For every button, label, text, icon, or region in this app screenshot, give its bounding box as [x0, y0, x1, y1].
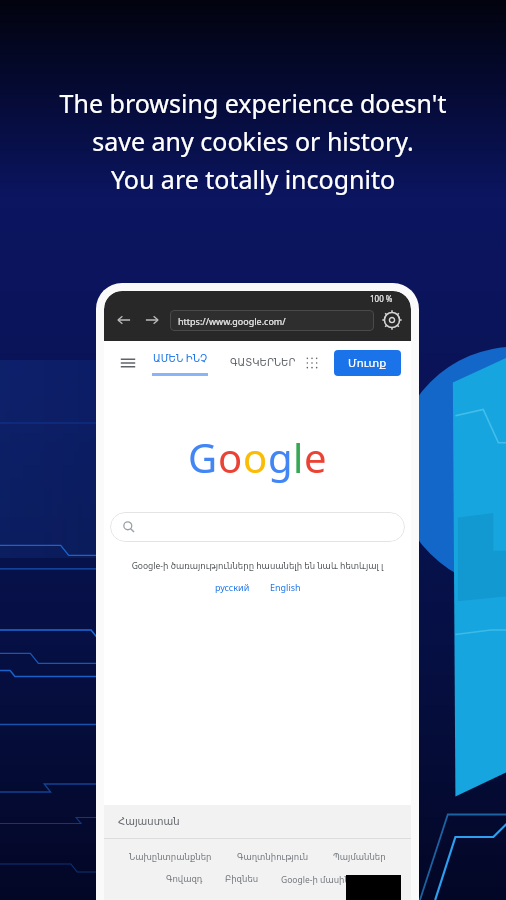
button[interactable]: Menu: [116, 351, 140, 375]
staticText: G: [188, 430, 218, 484]
button[interactable]: русский: [215, 581, 250, 593]
button[interactable]: Back: [110, 306, 138, 334]
button[interactable]: [110, 512, 405, 542]
button[interactable]: Google apps: [300, 351, 324, 375]
button[interactable]: Գաղտնիություն: [237, 852, 309, 862]
button[interactable]: Նախընտրանքներ: [129, 852, 212, 862]
staticText: o: [218, 430, 243, 484]
staticText: ԱՄԵՆ ԻՆՉ: [153, 351, 208, 365]
staticText: e: [304, 430, 327, 484]
button[interactable]: Forward: [138, 306, 166, 334]
button[interactable]: Մուտք: [334, 350, 401, 376]
staticText: g: [268, 430, 293, 484]
button[interactable]: Գովազդ: [166, 874, 203, 884]
button[interactable]: Settings: [379, 307, 405, 333]
staticText: Հայաստան: [118, 816, 180, 828]
button[interactable]: Պայմաններ: [333, 852, 386, 862]
button[interactable]: https://www.google.com/: [170, 310, 374, 331]
button[interactable]: ԱՄԵՆ ԻՆՉ: [152, 351, 208, 376]
staticText: Google-ի ծառայությունները հասանելի են նա…: [108, 560, 407, 572]
button[interactable]: English: [270, 581, 301, 593]
staticText: Մուտք: [348, 357, 387, 370]
staticText: https://www.google.com/: [178, 315, 286, 327]
button[interactable]: Google-ի մասին: [281, 874, 350, 886]
staticText: 100 %: [370, 293, 393, 304]
staticText: o: [243, 430, 268, 484]
staticText: l: [293, 430, 304, 484]
button[interactable]: Բիզնես: [225, 874, 259, 884]
button[interactable]: ԳԱՏԿԵՐՆԵՐ: [230, 357, 296, 369]
staticText: The browsing experience doesn't save any…: [10, 86, 496, 196]
